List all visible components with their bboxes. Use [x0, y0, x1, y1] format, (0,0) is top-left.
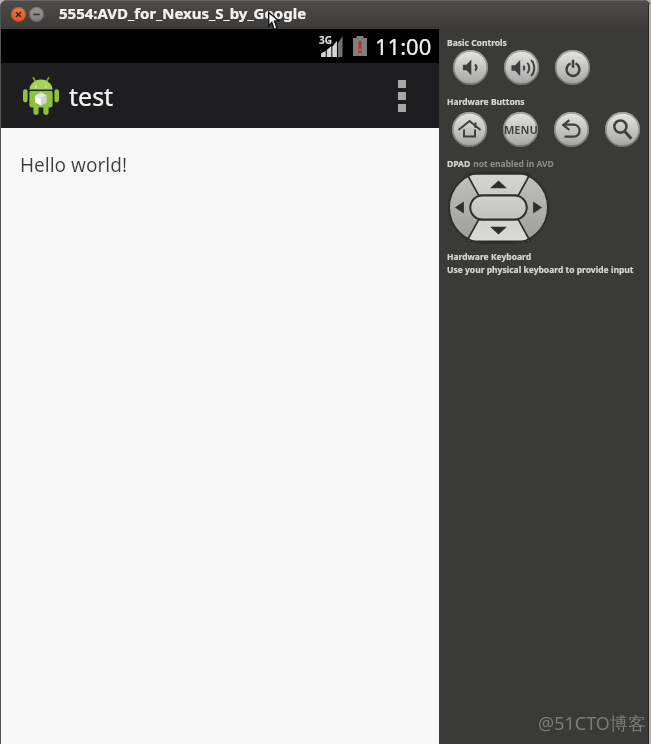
staticText: @51CTO博客 — [538, 711, 646, 736]
staticText: MENU — [504, 122, 538, 137]
staticText: test — [69, 79, 114, 113]
staticText: DPAD — [447, 158, 471, 170]
staticText: 11:00 — [375, 31, 432, 61]
button[interactable]: More options — [385, 63, 419, 128]
staticText: Use your physical keyboard to provide in… — [447, 264, 634, 276]
button[interactable]: Minimize window — [29, 7, 44, 22]
staticText: Basic Controls — [447, 37, 507, 49]
staticText: 5554:AVD_for_Nexus_S_by_Google — [59, 3, 307, 23]
button[interactable]: Volume up — [504, 50, 539, 85]
button[interactable]: Close window — [11, 7, 26, 22]
staticText: 3G — [319, 33, 332, 47]
staticText: Hardware Keyboard — [447, 251, 532, 263]
staticText: Hardware Buttons — [447, 96, 525, 108]
button[interactable]: Home — [452, 112, 487, 147]
staticText: not enabled in AVD — [471, 158, 554, 170]
button[interactable]: Menu — [503, 112, 538, 147]
button[interactable]: Back — [554, 112, 589, 147]
button[interactable]: D-pad — [449, 172, 548, 243]
button[interactable]: Power — [555, 50, 590, 85]
staticText: Hello world! — [20, 152, 128, 178]
button[interactable]: Search — [605, 112, 640, 147]
button[interactable]: Volume down — [453, 50, 488, 85]
